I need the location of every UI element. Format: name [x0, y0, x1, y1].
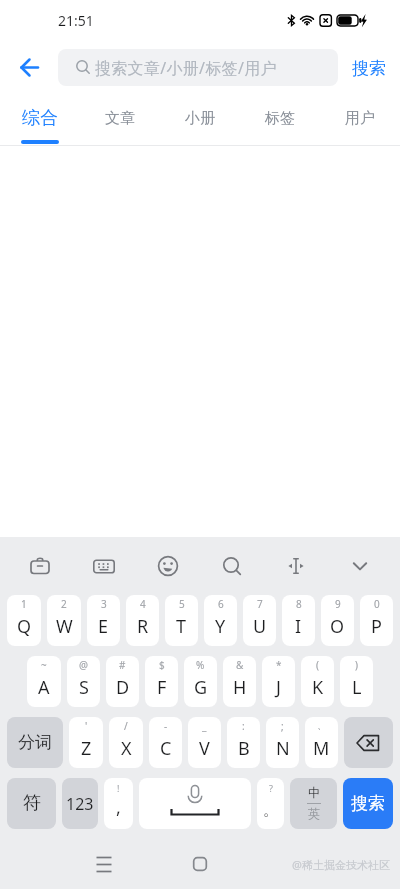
- staticText: ): [355, 658, 358, 672]
- button[interactable]: ): [340, 656, 373, 707]
- button[interactable]: [92, 851, 116, 877]
- button[interactable]: [136, 537, 200, 595]
- button[interactable]: :: [227, 717, 260, 768]
- staticText: I: [295, 614, 302, 639]
- staticText: 用户: [345, 109, 375, 128]
- staticText: U: [253, 614, 267, 639]
- button[interactable]: 123: [62, 778, 98, 829]
- staticText: 1: [21, 597, 27, 611]
- staticText: ?: [269, 782, 273, 794]
- staticText: _: [202, 719, 207, 733]
- button[interactable]: [328, 537, 392, 595]
- button[interactable]: 小册: [160, 96, 240, 146]
- button[interactable]: 3: [87, 595, 120, 646]
- staticText: 3: [101, 597, 107, 611]
- button[interactable]: /: [109, 717, 143, 768]
- staticText: O: [330, 614, 345, 639]
- button[interactable]: $: [145, 656, 178, 707]
- staticText: 英: [308, 806, 321, 822]
- button[interactable]: [139, 778, 251, 829]
- button[interactable]: 搜索文章/小册/标签/用户: [58, 49, 338, 86]
- staticText: 21:51: [58, 11, 94, 30]
- button[interactable]: 0: [360, 595, 393, 646]
- button[interactable]: ': [69, 717, 103, 768]
- staticText: 7: [257, 597, 263, 611]
- button[interactable]: ;: [266, 717, 299, 768]
- staticText: V: [199, 736, 210, 761]
- staticText: J: [276, 675, 281, 700]
- button[interactable]: 标签: [240, 96, 320, 146]
- button[interactable]: 4: [126, 595, 159, 646]
- button[interactable]: 分词: [7, 717, 63, 768]
- button[interactable]: 搜索: [343, 778, 393, 829]
- button[interactable]: %: [184, 656, 217, 707]
- button[interactable]: _: [188, 717, 221, 768]
- staticText: 、: [317, 719, 327, 732]
- button[interactable]: @: [67, 656, 100, 707]
- button[interactable]: 8: [282, 595, 315, 646]
- staticText: -: [164, 719, 168, 733]
- staticText: :: [242, 719, 245, 733]
- staticText: M: [313, 736, 330, 761]
- button[interactable]: [264, 537, 328, 595]
- button[interactable]: 用户: [320, 96, 400, 146]
- staticText: 0: [374, 597, 380, 611]
- staticText: B: [238, 736, 250, 761]
- button[interactable]: 符: [7, 778, 56, 829]
- button[interactable]: (: [301, 656, 334, 707]
- staticText: E: [98, 614, 109, 639]
- button[interactable]: 搜索: [338, 40, 400, 96]
- button[interactable]: [200, 537, 264, 595]
- staticText: @: [79, 658, 88, 672]
- staticText: ~: [41, 658, 47, 672]
- staticText: 8: [296, 597, 302, 611]
- button[interactable]: 1: [7, 595, 41, 646]
- button[interactable]: 2: [47, 595, 81, 646]
- button[interactable]: &: [223, 656, 256, 707]
- staticText: $: [159, 658, 165, 672]
- staticText: Y: [215, 614, 226, 639]
- staticText: 搜索: [352, 58, 386, 79]
- button[interactable]: 综合: [0, 96, 80, 146]
- button[interactable]: *: [262, 656, 295, 707]
- button[interactable]: 6: [204, 595, 237, 646]
- button[interactable]: [344, 717, 393, 768]
- staticText: *: [276, 658, 282, 672]
- button[interactable]: 、: [305, 717, 338, 768]
- staticText: X: [121, 736, 132, 761]
- button[interactable]: 5: [165, 595, 198, 646]
- staticText: !: [117, 782, 120, 794]
- button[interactable]: ~: [27, 656, 61, 707]
- staticText: F: [157, 675, 167, 700]
- staticText: D: [116, 675, 130, 700]
- button[interactable]: [0, 40, 48, 96]
- staticText: S: [79, 675, 89, 700]
- staticText: N: [276, 736, 290, 761]
- staticText: 分词: [18, 732, 52, 753]
- staticText: 小册: [185, 109, 215, 128]
- button[interactable]: ?: [257, 778, 284, 829]
- staticText: #: [119, 658, 126, 672]
- staticText: 搜索文章/小册/标签/用户: [95, 57, 277, 79]
- button[interactable]: 中: [290, 778, 337, 829]
- button[interactable]: 文章: [80, 96, 160, 146]
- staticText: &: [236, 658, 244, 672]
- staticText: 6: [218, 597, 224, 611]
- button[interactable]: [188, 851, 212, 877]
- button[interactable]: !: [104, 778, 133, 829]
- staticText: ': [85, 719, 88, 733]
- staticText: K: [312, 675, 324, 700]
- button[interactable]: [72, 537, 136, 595]
- staticText: 2: [61, 597, 67, 611]
- button[interactable]: 9: [321, 595, 354, 646]
- button[interactable]: 7: [243, 595, 276, 646]
- staticText: ;: [281, 719, 284, 733]
- staticText: 9: [335, 597, 341, 611]
- staticText: 123: [66, 793, 94, 815]
- staticText: 符: [23, 792, 41, 815]
- button[interactable]: [8, 537, 72, 595]
- button[interactable]: -: [149, 717, 182, 768]
- button[interactable]: #: [106, 656, 139, 707]
- staticText: 中: [308, 785, 321, 801]
- staticText: @稀土掘金技术社区: [292, 857, 390, 872]
